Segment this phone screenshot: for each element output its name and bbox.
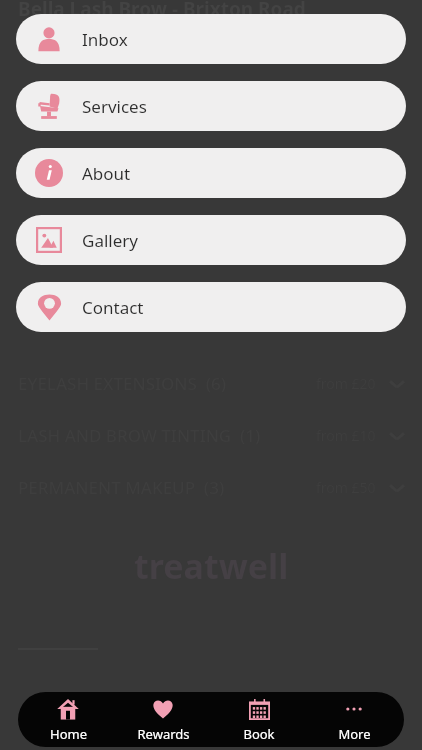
staticText: More [338,725,371,741]
button[interactable]: Services [16,81,406,131]
button[interactable]: Gallery [16,215,406,265]
button[interactable]: Inbox [16,14,406,64]
staticText: treatwell [134,543,289,589]
button[interactable]: Rewards [118,692,208,747]
button[interactable]: Home [23,692,113,747]
staticText: Inbox [82,28,128,51]
staticText: Book [243,725,275,741]
staticText: Home [50,725,87,741]
staticText: Rewards [137,725,190,741]
staticText: Contact [82,296,144,319]
button[interactable]: More [309,692,399,747]
staticText: Bella Lash Brow - Brixton Road [18,0,306,22]
staticText: About [82,162,131,185]
button[interactable]: About [16,148,406,198]
staticText: Gallery [82,229,138,252]
staticText: Services [82,95,147,118]
button[interactable]: Contact [16,282,406,332]
button[interactable]: Book [214,692,304,747]
